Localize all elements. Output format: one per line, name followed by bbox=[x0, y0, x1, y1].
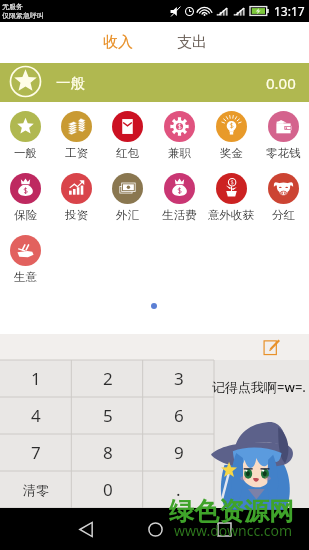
button[interactable]: Home bbox=[139, 513, 171, 545]
staticText: 记得点我啊=w=. bbox=[212, 378, 306, 396]
staticText: 0.00 bbox=[266, 73, 296, 93]
staticText: 7 bbox=[31, 441, 41, 464]
button[interactable]: 保险 bbox=[0, 173, 51, 235]
button[interactable]: 5 bbox=[72, 397, 143, 434]
button[interactable]: 红包 bbox=[102, 111, 153, 173]
button[interactable]: 奖金 bbox=[205, 111, 257, 173]
staticText: 绿色资源网 bbox=[169, 496, 294, 527]
button[interactable]: 6 bbox=[143, 397, 214, 434]
button[interactable]: 兼职 bbox=[153, 111, 205, 173]
button[interactable]: 9 bbox=[143, 434, 214, 471]
staticText: 生活费 bbox=[162, 208, 197, 222]
button[interactable]: 意外收获 bbox=[205, 173, 257, 235]
staticText: 保险 bbox=[14, 208, 37, 222]
staticText: 仅限紧急呼叫 bbox=[2, 11, 44, 20]
staticText: 4 bbox=[31, 404, 41, 427]
staticText: 红包 bbox=[116, 146, 139, 160]
staticText: 3 bbox=[174, 367, 184, 390]
button[interactable]: 支出 bbox=[157, 22, 227, 63]
button[interactable]: Recents bbox=[208, 513, 240, 545]
staticText: www.downcc.com bbox=[174, 521, 293, 540]
button[interactable]: 1 bbox=[0, 360, 72, 397]
button[interactable] bbox=[214, 360, 309, 508]
button[interactable]: Edit note bbox=[263, 338, 281, 356]
button[interactable]: 工资 bbox=[51, 111, 102, 173]
staticText: . bbox=[176, 478, 181, 501]
staticText: 9 bbox=[174, 441, 184, 464]
button[interactable]: 2 bbox=[72, 360, 143, 397]
staticText: 清零 bbox=[23, 482, 49, 498]
staticText: 8 bbox=[103, 441, 113, 464]
staticText: 5 bbox=[103, 404, 113, 427]
staticText: 6 bbox=[174, 404, 184, 427]
button[interactable]: 零花钱 bbox=[257, 111, 309, 173]
button[interactable]: 生意 bbox=[0, 235, 51, 291]
staticText: 奖金 bbox=[220, 146, 243, 160]
staticText: 一般 bbox=[14, 146, 37, 160]
staticText: 收入 bbox=[103, 33, 133, 52]
button[interactable]: 清零 bbox=[0, 471, 72, 508]
staticText: 投资 bbox=[65, 208, 88, 222]
staticText: 兼职 bbox=[168, 146, 191, 160]
staticText: 一般 bbox=[56, 74, 85, 92]
button[interactable]: 0 bbox=[72, 471, 143, 508]
button[interactable]: 3 bbox=[143, 360, 214, 397]
staticText: 零花钱 bbox=[266, 146, 301, 160]
staticText: 工资 bbox=[65, 146, 88, 160]
staticText: 生意 bbox=[14, 270, 37, 284]
button[interactable]: 投资 bbox=[51, 173, 102, 235]
staticText: 13:17 bbox=[274, 3, 305, 19]
button[interactable]: 生活费 bbox=[153, 173, 205, 235]
staticText: 分红 bbox=[272, 208, 295, 222]
button[interactable]: 一般 bbox=[0, 63, 309, 102]
button[interactable]: Back bbox=[70, 513, 102, 545]
staticText: 意外收获 bbox=[208, 208, 254, 222]
staticText: 无服务 bbox=[2, 2, 23, 11]
button[interactable]: 一般 bbox=[0, 111, 51, 173]
staticText: 外汇 bbox=[116, 208, 139, 222]
button[interactable]: 7 bbox=[0, 434, 72, 471]
button[interactable]: 收入 bbox=[83, 22, 153, 63]
button[interactable]: . bbox=[143, 471, 214, 508]
staticText: 1 bbox=[31, 367, 41, 390]
button[interactable]: 4 bbox=[0, 397, 72, 434]
staticText: 0 bbox=[103, 478, 113, 501]
button[interactable]: 外汇 bbox=[102, 173, 153, 235]
button[interactable]: 分红 bbox=[257, 173, 309, 235]
staticText: 支出 bbox=[177, 33, 207, 52]
staticText: 2 bbox=[103, 367, 113, 390]
button[interactable]: 8 bbox=[72, 434, 143, 471]
